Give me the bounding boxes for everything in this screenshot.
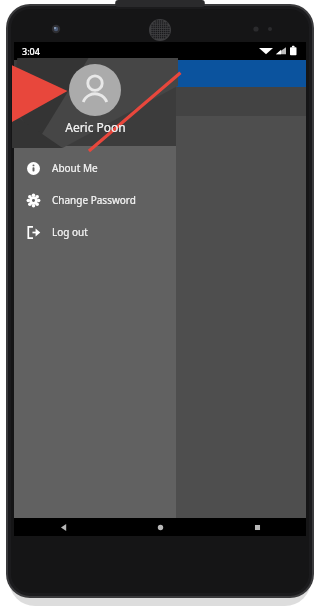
button[interactable]: Back: [14, 518, 112, 536]
staticText: Log out: [52, 225, 88, 239]
button[interactable]: Log out: [14, 216, 176, 248]
staticText: About Me: [52, 161, 98, 175]
button[interactable]: Recents: [209, 518, 306, 536]
staticText: Change Password: [52, 193, 136, 207]
staticText: 3:04: [22, 45, 40, 57]
button[interactable]: About Me: [14, 152, 176, 184]
button[interactable]: Change Password: [14, 184, 176, 216]
button[interactable]: Home: [112, 518, 209, 536]
staticText: Aeric Poon: [65, 119, 126, 135]
button[interactable]: Aeric Poon: [14, 60, 176, 146]
